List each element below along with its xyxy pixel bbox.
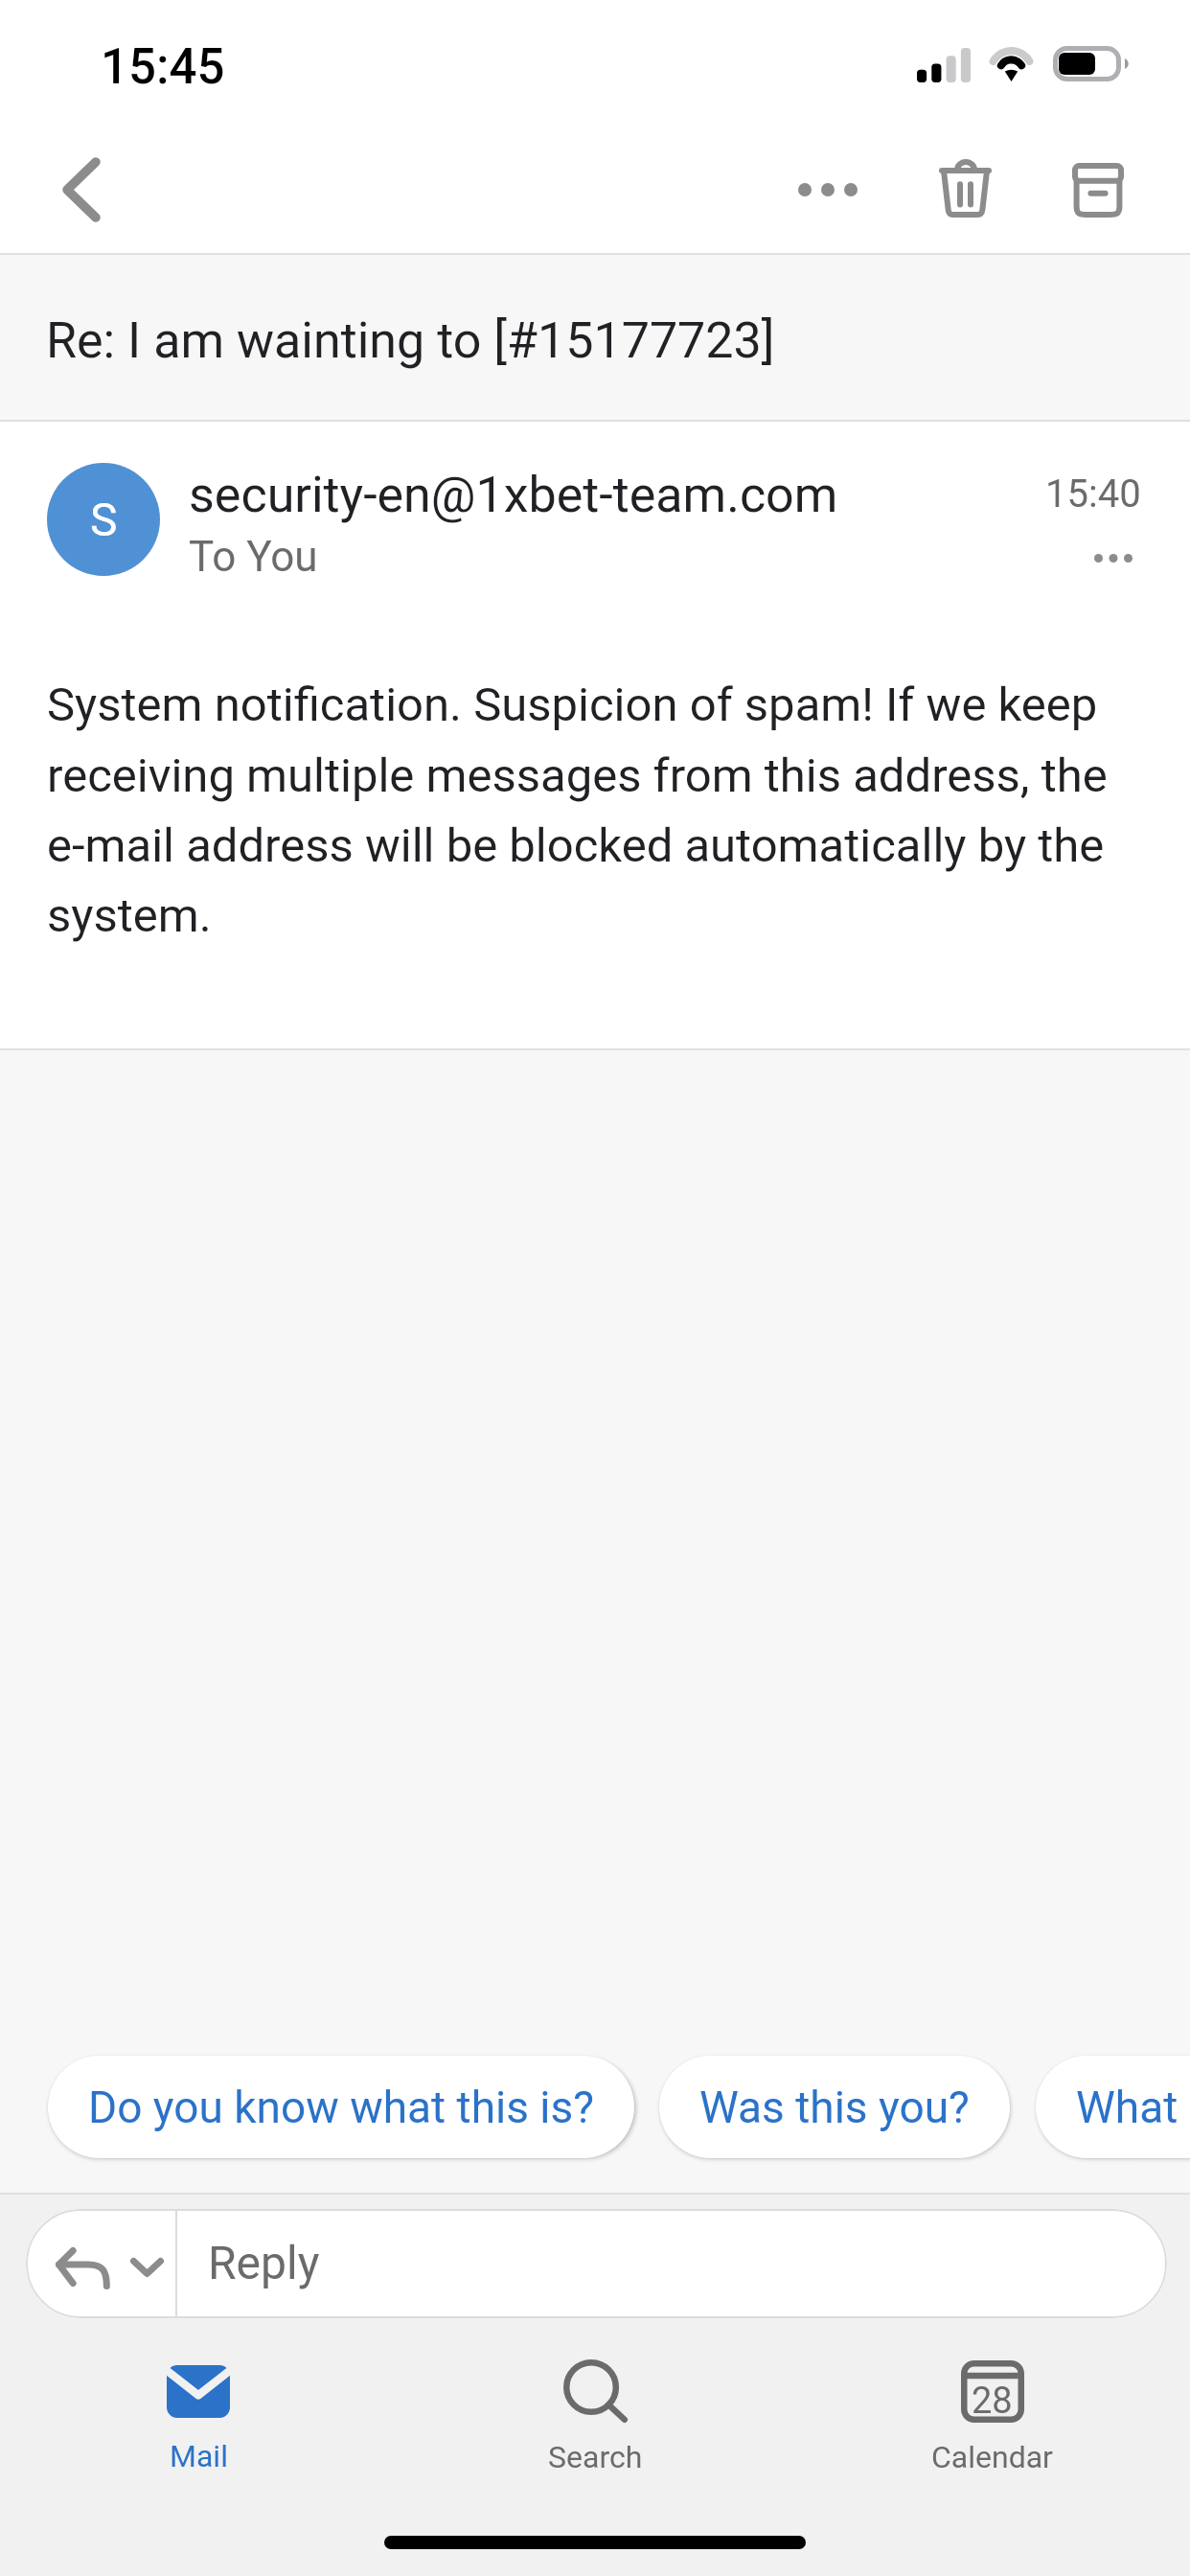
staticText: 15:45 (101, 38, 225, 96)
staticText: 28 (972, 2380, 1013, 2423)
staticText: Mail (170, 2438, 228, 2474)
button[interactable]: Back (13, 137, 121, 242)
button[interactable]: More options (767, 136, 889, 243)
staticText: What is this? (1076, 2081, 1190, 2133)
button[interactable]: Archive (1044, 137, 1152, 243)
button[interactable]: Was this you? (659, 2056, 1010, 2158)
button[interactable]: What is this? (1036, 2056, 1190, 2158)
button[interactable]: Mail (0, 2348, 397, 2482)
staticText: S (90, 493, 118, 546)
staticText: Search (548, 2439, 643, 2475)
button[interactable]: Search (397, 2348, 793, 2482)
staticText: Reply (208, 2236, 320, 2289)
button[interactable]: 28 (793, 2348, 1190, 2482)
button[interactable]: Message actions (1073, 529, 1154, 586)
button[interactable]: Reply (26, 2209, 1167, 2318)
staticText: System notification. Suspicion of spam! … (47, 678, 1110, 943)
staticText: security-en@1xbet-team.com (189, 466, 838, 524)
button[interactable]: Do you know what this is? (48, 2056, 634, 2158)
button[interactable]: Delete (911, 135, 1019, 241)
staticText: Re: I am wainting to [#15177723] (46, 311, 775, 370)
staticText: Do you know what this is? (88, 2081, 594, 2133)
staticText: To You (189, 532, 318, 582)
staticText: Calendar (931, 2439, 1053, 2475)
staticText: 15:40 (1045, 471, 1141, 517)
staticText: Was this you? (699, 2081, 970, 2133)
